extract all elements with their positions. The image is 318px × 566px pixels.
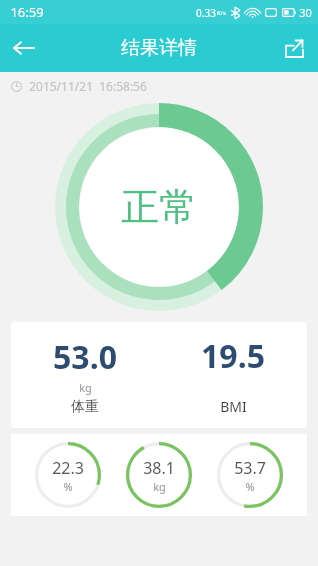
button[interactable]: Share [270,24,318,72]
button[interactable]: 53.0 [11,322,307,428]
staticText: BMI [220,397,247,416]
staticText: K/s [217,9,226,17]
staticText: 2015/11/21 16:58:56 [29,78,147,94]
staticText: 结果详情 [121,36,197,60]
button[interactable]: Back [0,24,48,72]
staticText: 0.33 [196,6,216,20]
staticText: kg [153,479,166,494]
staticText: 38.1 [143,457,175,479]
button[interactable]: 53.7 [216,441,284,509]
staticText: 19.5 [201,334,265,378]
staticText: 正常 [121,183,197,231]
staticText: 53.7 [234,457,266,479]
staticText: % [245,479,255,494]
staticText: 22.3 [52,457,84,479]
button[interactable]: 38.1 [125,441,193,509]
staticText: 53.0 [53,335,117,379]
staticText: 30 [299,5,312,20]
staticText: 体重 [71,398,99,416]
staticText: % [63,479,73,494]
button[interactable]: 22.3 [34,441,102,509]
staticText: kg [79,380,92,395]
staticText: 16:59 [10,3,44,21]
